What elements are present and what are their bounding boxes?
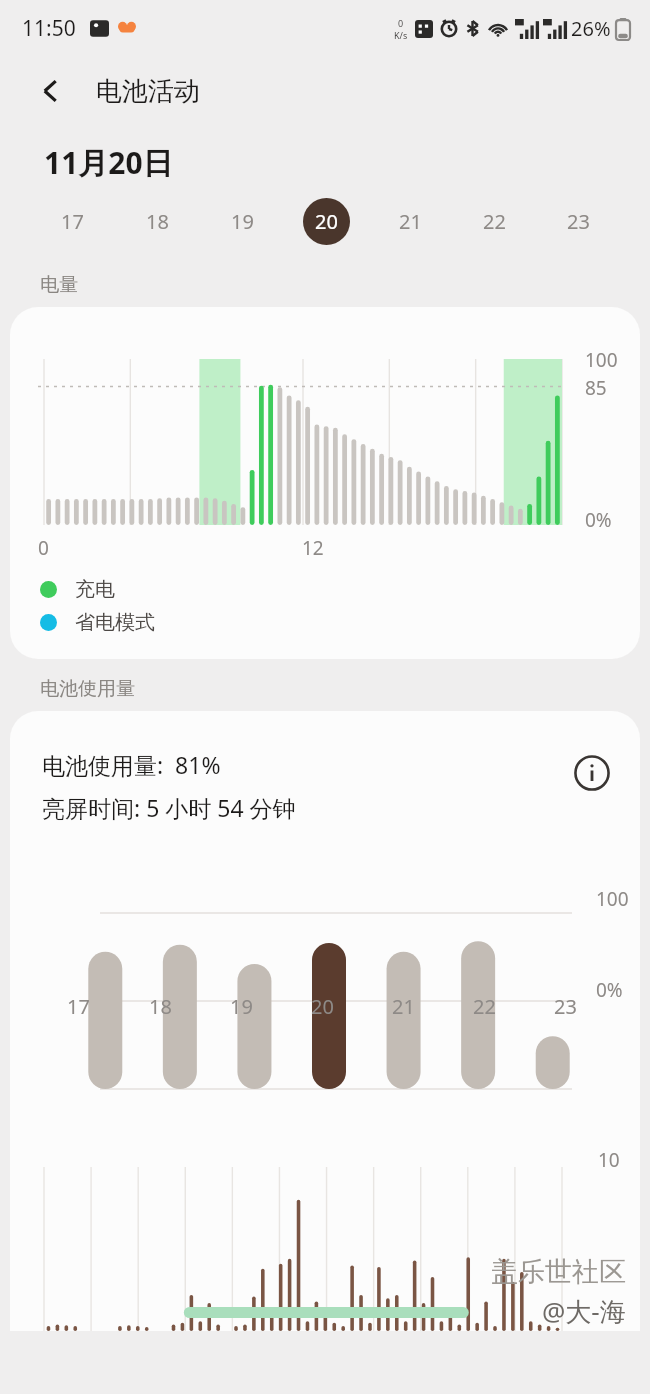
staticText: 85 bbox=[585, 375, 607, 401]
staticText: 11:50 bbox=[22, 14, 76, 43]
staticText: 21 bbox=[392, 993, 415, 1020]
staticText: 电池活动 bbox=[96, 75, 200, 108]
staticText: 100 bbox=[585, 347, 618, 373]
staticText: K/s bbox=[394, 29, 408, 41]
button[interactable]: 19 bbox=[200, 190, 284, 252]
staticText: 19 bbox=[231, 208, 254, 235]
button[interactable]: 20 bbox=[284, 190, 368, 252]
staticText: 100 bbox=[596, 886, 629, 912]
staticText: 19 bbox=[230, 993, 253, 1020]
staticText: 20 bbox=[315, 208, 338, 235]
staticText: @大-海 bbox=[542, 1293, 626, 1329]
staticText: 盖乐世社区 bbox=[491, 1255, 626, 1289]
button[interactable]: 22 bbox=[452, 190, 536, 252]
staticText: 22 bbox=[473, 993, 496, 1020]
staticText: 0 bbox=[398, 17, 404, 29]
staticText: 0 bbox=[38, 535, 49, 561]
button[interactable]: 17 bbox=[30, 190, 115, 252]
button[interactable]: 100 bbox=[10, 307, 640, 659]
staticText: 21 bbox=[399, 208, 422, 235]
staticText: 23 bbox=[567, 208, 590, 235]
staticText: 26% bbox=[571, 15, 611, 42]
staticText: 电池使用量: 81% bbox=[42, 749, 221, 780]
staticText: 省电模式 bbox=[75, 610, 155, 635]
staticText: 10 bbox=[598, 1147, 620, 1173]
staticText: 17 bbox=[61, 208, 84, 235]
staticText: 电量 bbox=[40, 273, 78, 297]
staticText: 18 bbox=[146, 208, 169, 235]
staticText: 22 bbox=[483, 208, 506, 235]
button[interactable]: 21 bbox=[368, 190, 452, 252]
staticText: 12 bbox=[302, 535, 324, 561]
button[interactable]: 23 bbox=[536, 190, 620, 252]
staticText: 20 bbox=[311, 993, 334, 1020]
staticText: 0% bbox=[596, 977, 623, 1003]
staticText: 11月20日 bbox=[44, 142, 173, 183]
staticText: 17 bbox=[67, 993, 90, 1020]
staticText: 充电 bbox=[75, 577, 115, 602]
staticText: 0% bbox=[585, 507, 612, 533]
button[interactable]: 18 bbox=[115, 190, 200, 252]
button[interactable]: Back bbox=[28, 68, 74, 114]
staticText: 23 bbox=[554, 993, 577, 1020]
staticText: 电池使用量 bbox=[40, 677, 135, 701]
staticText: 18 bbox=[149, 993, 172, 1020]
staticText: 亮屏时间: 5 小时 54 分钟 bbox=[42, 792, 296, 823]
button[interactable]: Info bbox=[568, 749, 616, 797]
